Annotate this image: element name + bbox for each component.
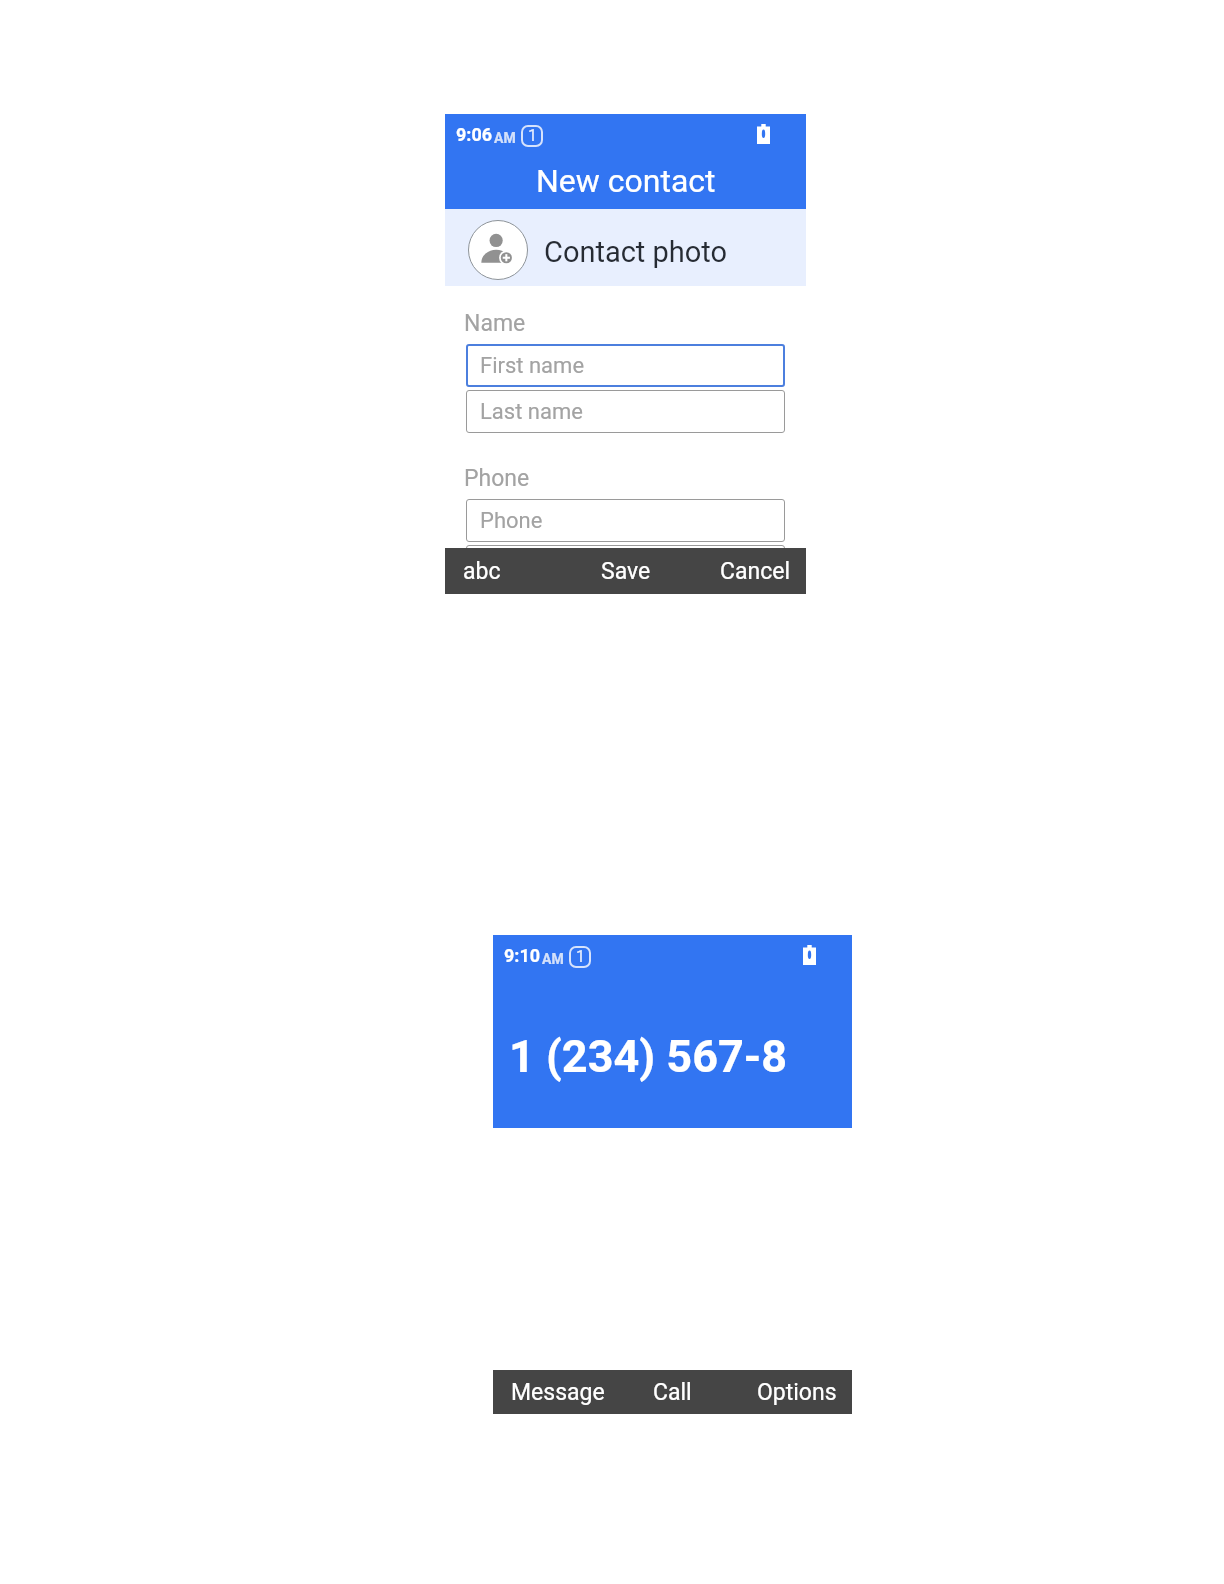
button[interactable]: First name bbox=[466, 344, 785, 387]
button[interactable] bbox=[466, 545, 785, 588]
staticText: 9:06 bbox=[456, 124, 493, 145]
staticText: Last name bbox=[480, 399, 583, 425]
staticText: 1 (234) 567-8 bbox=[509, 1030, 788, 1083]
staticText: AM bbox=[494, 130, 516, 146]
staticText: AM bbox=[542, 951, 564, 967]
button[interactable]: Options bbox=[732, 1370, 852, 1414]
button[interactable]: Save bbox=[566, 548, 686, 594]
staticText: Cancel bbox=[720, 558, 791, 585]
staticText: New contact bbox=[536, 162, 716, 200]
button[interactable]: Add contact photo bbox=[445, 209, 806, 286]
other: Battery bbox=[757, 124, 770, 144]
button[interactable]: Call bbox=[612, 1370, 732, 1414]
staticText: Phone bbox=[464, 465, 530, 492]
staticText: 9:10 bbox=[504, 945, 541, 966]
button[interactable]: Last name bbox=[466, 390, 785, 433]
button[interactable]: Phone bbox=[466, 499, 785, 542]
button[interactable]: abc bbox=[445, 548, 566, 594]
staticText: First name bbox=[480, 353, 585, 379]
staticText: Contact photo bbox=[544, 235, 728, 269]
button[interactable]: Cancel bbox=[686, 548, 806, 594]
staticText: Phone bbox=[480, 508, 543, 534]
staticText: Save bbox=[601, 558, 651, 585]
staticText: Message bbox=[511, 1379, 605, 1406]
staticText: Options bbox=[757, 1379, 837, 1406]
staticText: Call bbox=[653, 1379, 692, 1406]
staticText: abc bbox=[463, 558, 501, 585]
staticText: 1 bbox=[528, 126, 537, 145]
button[interactable]: Message bbox=[493, 1370, 612, 1414]
other: Battery bbox=[803, 945, 816, 965]
other: Add contact photo bbox=[468, 220, 528, 280]
staticText: 1 bbox=[576, 947, 585, 966]
staticText: Name bbox=[464, 310, 526, 337]
